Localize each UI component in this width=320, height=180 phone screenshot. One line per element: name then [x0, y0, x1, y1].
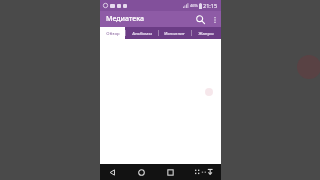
button[interactable]: Альбомы [125, 27, 158, 39]
staticText: 21:15 [203, 2, 218, 9]
staticText: 46% [190, 3, 198, 8]
button[interactable]: Исполнит [158, 27, 191, 39]
button[interactable]: Back [105, 165, 119, 179]
staticText: Обзор [106, 30, 120, 36]
staticText: Жанры [198, 30, 214, 36]
button[interactable]: Search [193, 12, 208, 27]
button[interactable]: Screen capture [192, 165, 216, 179]
button[interactable]: Жанры [191, 27, 221, 39]
button[interactable]: Recent apps [163, 165, 177, 179]
button[interactable]: More options [208, 13, 221, 26]
button[interactable]: Обзор [100, 27, 125, 39]
staticText: Медиатека [106, 14, 144, 24]
staticText: Альбомы [132, 30, 152, 36]
button[interactable]: Home [134, 165, 148, 179]
staticText: Исполнит [164, 30, 185, 36]
